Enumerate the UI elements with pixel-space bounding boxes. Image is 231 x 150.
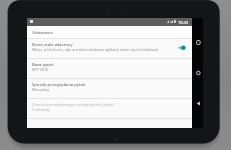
button[interactable]: Ekran stale wlaczony — [172, 42, 188, 54]
staticText: 10:33 — [178, 20, 189, 25]
staticText: Ekran stale włączony — [32, 42, 73, 48]
staticText: Manualny — [32, 87, 50, 92]
staticText: 2 sekundy — [32, 107, 50, 112]
staticText: KPP 2016 — [32, 67, 49, 72]
staticText: Czas automatycznego przeglądania pytań — [32, 102, 114, 108]
button[interactable]: Czas automatycznego przeglądania pytań — [27, 99, 192, 118]
button[interactable]: Baza pytań — [27, 59, 192, 78]
staticText: Ustawienia — [32, 30, 53, 35]
button[interactable]: Recent apps — [192, 35, 203, 51]
staticText: Sposób przeglądania pytań — [32, 82, 86, 88]
button[interactable]: Home — [192, 65, 203, 81]
button[interactable]: Sposób przeglądania pytań — [27, 79, 192, 98]
button[interactable]: Ekran stale włączony — [27, 39, 192, 58]
staticText: Baza pytań — [32, 62, 54, 68]
button[interactable]: Back — [192, 96, 203, 112]
staticText: Włącz, jeśli chcesz, aby w trakcie dział… — [32, 47, 158, 52]
